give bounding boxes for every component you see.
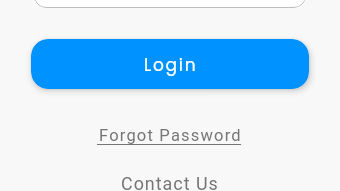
staticText: Contact Us bbox=[121, 173, 219, 191]
button[interactable]: Forgot Password bbox=[85, 118, 256, 150]
button[interactable]: Contact Us bbox=[110, 173, 230, 191]
staticText: Login bbox=[144, 53, 198, 77]
button[interactable]: Password field bbox=[34, 0, 306, 8]
staticText: Forgot Password bbox=[99, 126, 242, 145]
button[interactable]: Login bbox=[31, 39, 309, 89]
